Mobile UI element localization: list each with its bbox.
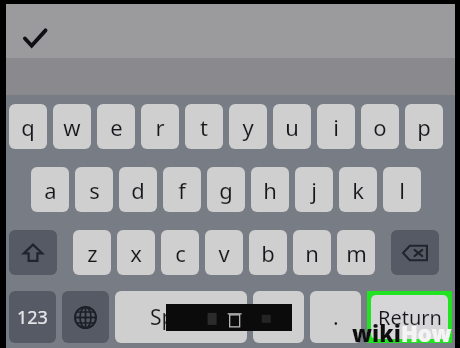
staticText: c [175, 238, 186, 268]
button[interactable]: o [361, 104, 399, 149]
button[interactable]: Return [371, 295, 448, 339]
button[interactable]: j [295, 167, 333, 212]
button[interactable]: e [97, 104, 135, 149]
staticText: d [131, 175, 145, 205]
staticText: wiki [352, 318, 401, 348]
staticText: j [311, 175, 317, 205]
button[interactable]: d [119, 167, 157, 212]
button[interactable]: Backspace [391, 230, 439, 275]
staticText: a [44, 175, 57, 205]
button[interactable]: k [339, 167, 377, 212]
button[interactable]: c [161, 230, 199, 275]
button[interactable]: u [273, 104, 311, 149]
staticText: How [401, 318, 452, 348]
button[interactable]: m [337, 230, 375, 275]
staticText: x [130, 238, 142, 268]
staticText: 123 [17, 305, 48, 330]
button[interactable]: l [383, 167, 421, 212]
button[interactable]: p [405, 104, 443, 149]
button[interactable]: w [53, 104, 91, 149]
button[interactable]: Spatiu [115, 291, 247, 343]
button[interactable]: x [117, 230, 155, 275]
button[interactable]: a [31, 167, 69, 212]
button[interactable]: f [163, 167, 201, 212]
button[interactable]: y [229, 104, 267, 149]
staticText: Spatiu [150, 303, 213, 332]
staticText: e [110, 112, 123, 142]
staticText: k [352, 175, 364, 205]
button[interactable]: n [293, 230, 331, 275]
button[interactable]: 123 [9, 291, 56, 343]
button[interactable]: q [9, 104, 47, 149]
button[interactable]: t [185, 104, 223, 149]
button[interactable]: g [207, 167, 245, 212]
button[interactable]: . [310, 291, 361, 343]
staticText: Return [378, 304, 442, 331]
staticText: z [87, 238, 98, 268]
button[interactable]: v [205, 230, 243, 275]
button[interactable]: Shift [9, 230, 57, 275]
staticText: . [333, 303, 339, 332]
staticText: y [242, 112, 254, 142]
button[interactable]: Confirm [6, 4, 455, 58]
button[interactable]: Change language [62, 291, 109, 343]
staticText: r [155, 112, 165, 142]
staticText: l [399, 175, 405, 205]
staticText: n [305, 238, 319, 268]
staticText: v [218, 238, 230, 268]
staticText: u [285, 112, 299, 142]
staticText: i [333, 112, 339, 142]
staticText: s [89, 175, 100, 205]
button[interactable]: b [249, 230, 287, 275]
staticText: h [263, 175, 277, 205]
staticText: f [178, 175, 186, 205]
button[interactable]: z [73, 230, 111, 275]
button[interactable]: i [317, 104, 355, 149]
staticText: m [346, 238, 367, 268]
staticText: g [219, 175, 233, 205]
button[interactable]: h [251, 167, 289, 212]
button[interactable]: r [141, 104, 179, 149]
button[interactable]: Emoji [253, 291, 304, 343]
staticText: q [21, 112, 35, 142]
staticText: b [261, 238, 275, 268]
staticText: o [373, 112, 387, 142]
staticText: t [200, 112, 208, 142]
button[interactable]: s [75, 167, 113, 212]
staticText: p [417, 112, 431, 142]
staticText: w [63, 112, 81, 142]
